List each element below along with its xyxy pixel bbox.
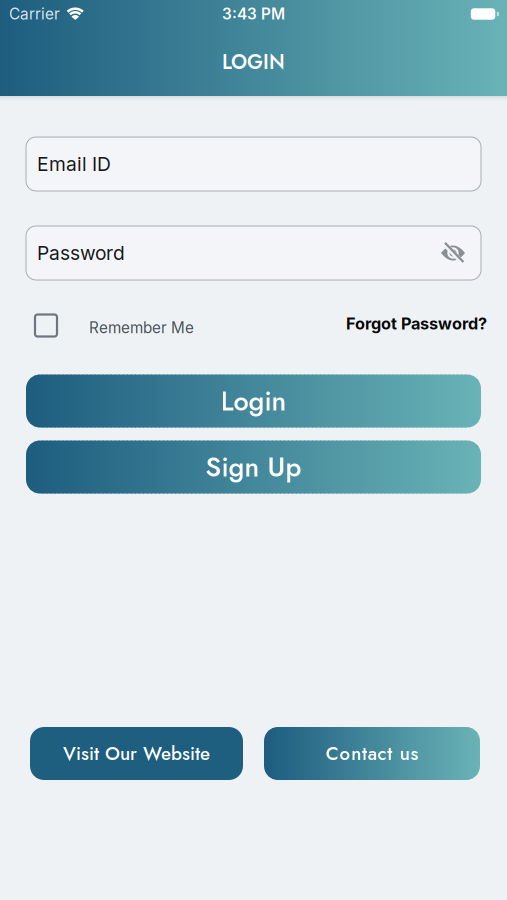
staticText: Carrier	[9, 5, 60, 23]
button[interactable]: Forgot Password?	[346, 316, 487, 335]
staticText: LOGIN	[222, 47, 285, 76]
staticText: Login	[220, 381, 286, 420]
staticText: Visit Our Website	[63, 740, 210, 767]
button[interactable]: Remember Me	[35, 314, 194, 336]
button[interactable]: Contact us	[264, 727, 480, 780]
staticText: Remember Me	[89, 318, 194, 337]
staticText: Contact us	[326, 740, 418, 767]
staticText: Forgot Password?	[346, 314, 487, 333]
button[interactable]: Sign Up	[26, 440, 481, 493]
staticText: 3:43 PM	[222, 5, 285, 23]
button[interactable]: Login	[26, 374, 481, 427]
button[interactable]: Email ID	[26, 137, 481, 191]
button[interactable]: Password	[26, 226, 481, 280]
button[interactable]: Visit Our Website	[30, 727, 243, 780]
staticText: Sign Up	[205, 447, 301, 486]
staticText: Email ID	[37, 152, 111, 176]
button[interactable]	[440, 241, 481, 265]
staticText: Password	[37, 241, 125, 265]
